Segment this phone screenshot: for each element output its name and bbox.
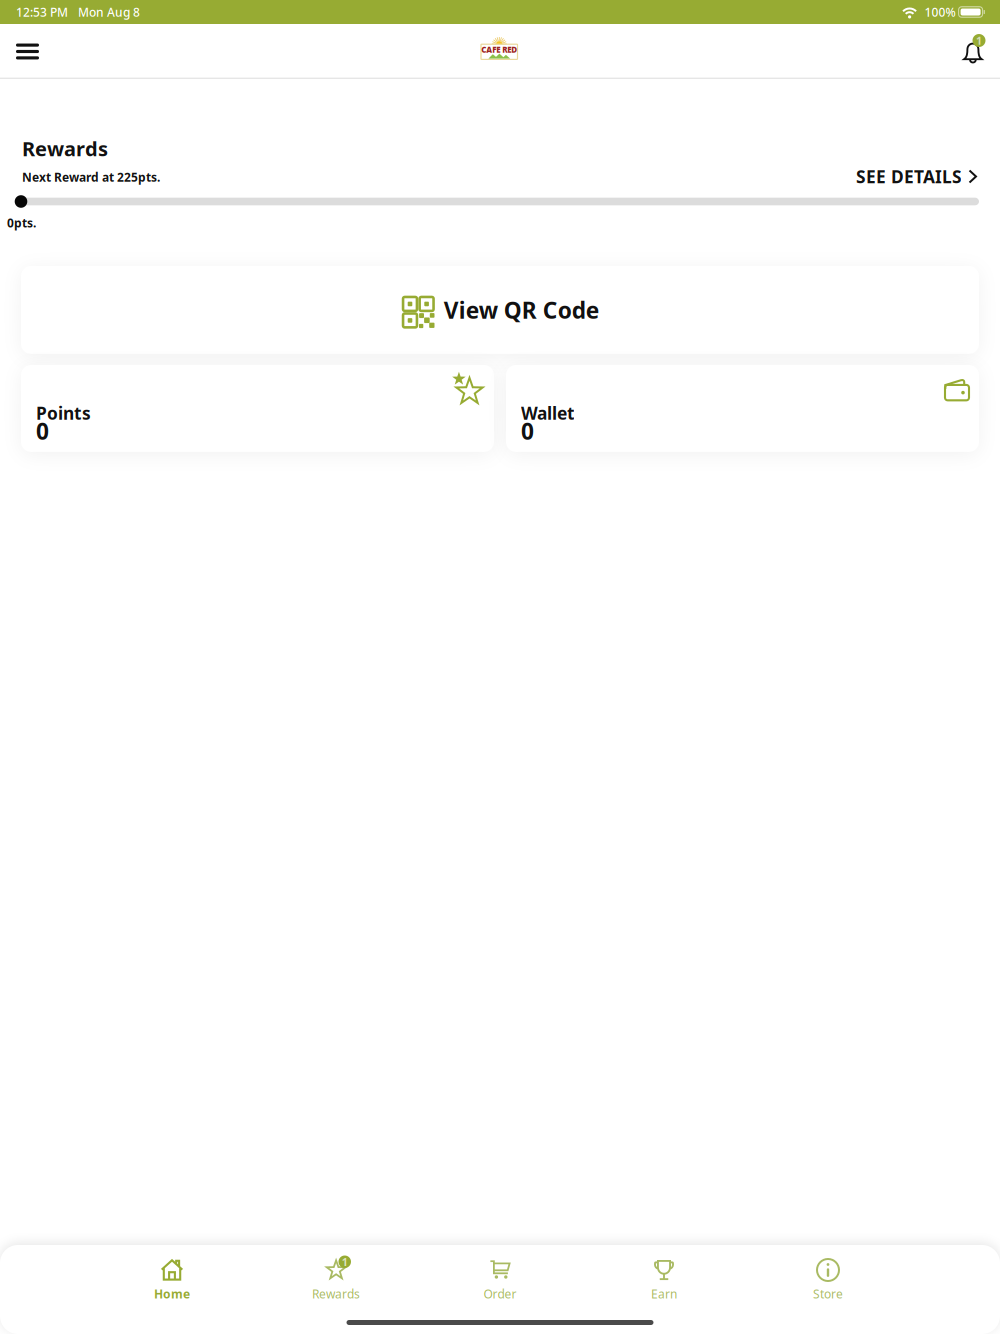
staticText: 1: [976, 33, 982, 48]
button[interactable]: Menu: [0, 24, 68, 79]
button[interactable]: Order: [418, 1257, 582, 1302]
button[interactable]: Notifications: [931, 24, 1000, 79]
staticText: Rewards: [312, 1286, 360, 1302]
staticText: Home: [154, 1286, 190, 1302]
button[interactable]: 1: [254, 1257, 418, 1302]
staticText: 100%: [925, 4, 956, 20]
staticText: 0: [36, 416, 49, 446]
staticText: Points: [36, 401, 91, 424]
button[interactable]: Home: [90, 1257, 254, 1302]
staticText: 12:53 PM: [16, 4, 68, 20]
staticText: Rewards: [22, 135, 108, 162]
button[interactable]: Earn: [582, 1257, 746, 1302]
button[interactable]: Points: [21, 365, 494, 452]
staticText: Wallet: [521, 401, 575, 424]
staticText: 1: [342, 1255, 348, 1269]
staticText: CAFE RED: [481, 44, 517, 55]
staticText: View QR Code: [444, 295, 600, 325]
staticText: 0: [521, 416, 534, 446]
staticText: Order: [483, 1286, 516, 1302]
staticText: Earn: [651, 1286, 677, 1302]
staticText: Next Reward at 225pts.: [22, 169, 160, 185]
staticText: 0pts.: [7, 215, 36, 231]
button[interactable]: SEE DETAILS: [856, 162, 1000, 185]
button[interactable]: Wallet: [506, 365, 979, 452]
staticText: SEE DETAILS: [856, 165, 962, 188]
button[interactable]: View QR Code: [21, 266, 979, 354]
staticText: Store: [813, 1286, 843, 1302]
staticText: Mon Aug 8: [78, 4, 140, 20]
button[interactable]: Store: [746, 1257, 910, 1302]
